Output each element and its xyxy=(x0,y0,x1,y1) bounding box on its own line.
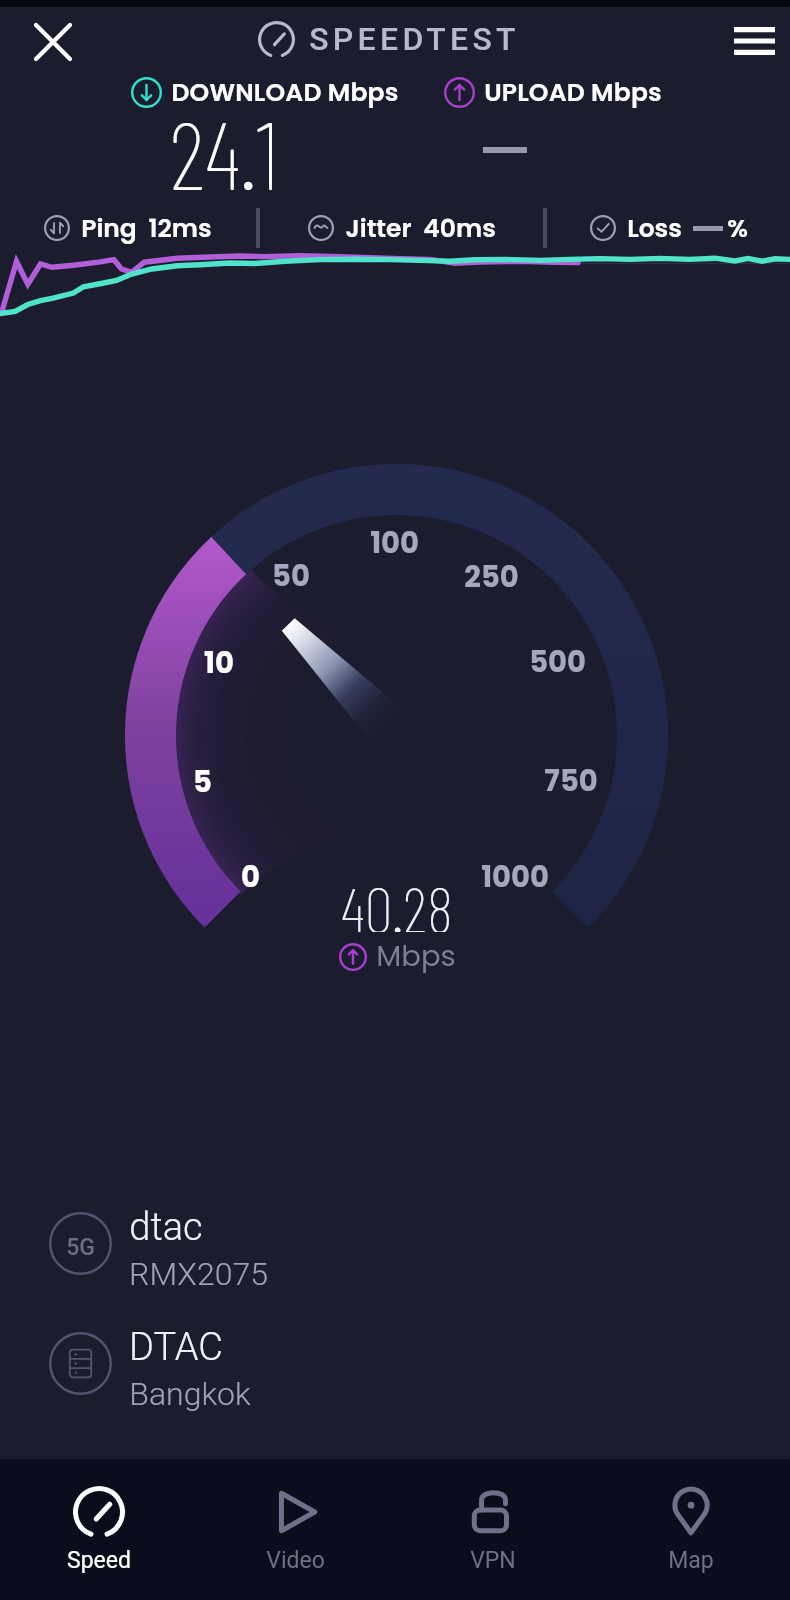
staticText: % xyxy=(727,211,748,246)
staticText: Speed xyxy=(67,1547,131,1574)
button[interactable]: Loss xyxy=(547,198,790,258)
staticText: 0 xyxy=(241,857,260,898)
staticText: DTAC xyxy=(129,1325,223,1370)
staticText: Bangkok xyxy=(129,1375,251,1413)
staticText: 5 xyxy=(193,762,212,803)
staticText: SPEEDTEST xyxy=(309,20,520,58)
button[interactable]: VPN xyxy=(394,1459,592,1600)
staticText: RMX2075 xyxy=(129,1255,268,1293)
button[interactable]: Video xyxy=(197,1459,394,1600)
staticText: Loss xyxy=(627,211,682,246)
button[interactable]: Map xyxy=(592,1459,790,1600)
button[interactable]: Menu xyxy=(717,7,790,74)
staticText: Mbps xyxy=(376,936,456,977)
staticText: 750 xyxy=(544,761,598,802)
staticText: 40.28 xyxy=(341,870,453,932)
staticText: 1000 xyxy=(481,857,549,898)
staticText: 250 xyxy=(464,557,519,598)
button[interactable]: Speed xyxy=(0,1459,197,1600)
staticText: 10 xyxy=(204,643,234,684)
button[interactable]: Ping xyxy=(0,198,256,258)
staticText: Map xyxy=(668,1547,714,1574)
staticText: DOWNLOAD Mbps xyxy=(171,75,399,110)
staticText: 50 xyxy=(272,556,310,597)
staticText: 24.1 xyxy=(169,96,279,204)
button[interactable]: 5G xyxy=(0,1193,790,1293)
button[interactable]: Jitter xyxy=(260,198,543,258)
staticText: VPN xyxy=(470,1547,516,1574)
staticText: Video xyxy=(266,1547,325,1574)
staticText: 5G xyxy=(66,1234,95,1261)
button[interactable]: Close xyxy=(19,8,86,75)
staticText: 40ms xyxy=(423,211,496,246)
button[interactable]: DTAC xyxy=(0,1313,790,1413)
staticText: 100 xyxy=(370,523,419,564)
staticText: dtac xyxy=(129,1205,203,1250)
staticText: UPLOAD Mbps xyxy=(484,75,662,110)
staticText: 500 xyxy=(529,642,586,683)
staticText: Jitter xyxy=(345,211,412,246)
staticText: 12ms xyxy=(148,211,212,246)
staticText: Ping xyxy=(81,211,137,246)
